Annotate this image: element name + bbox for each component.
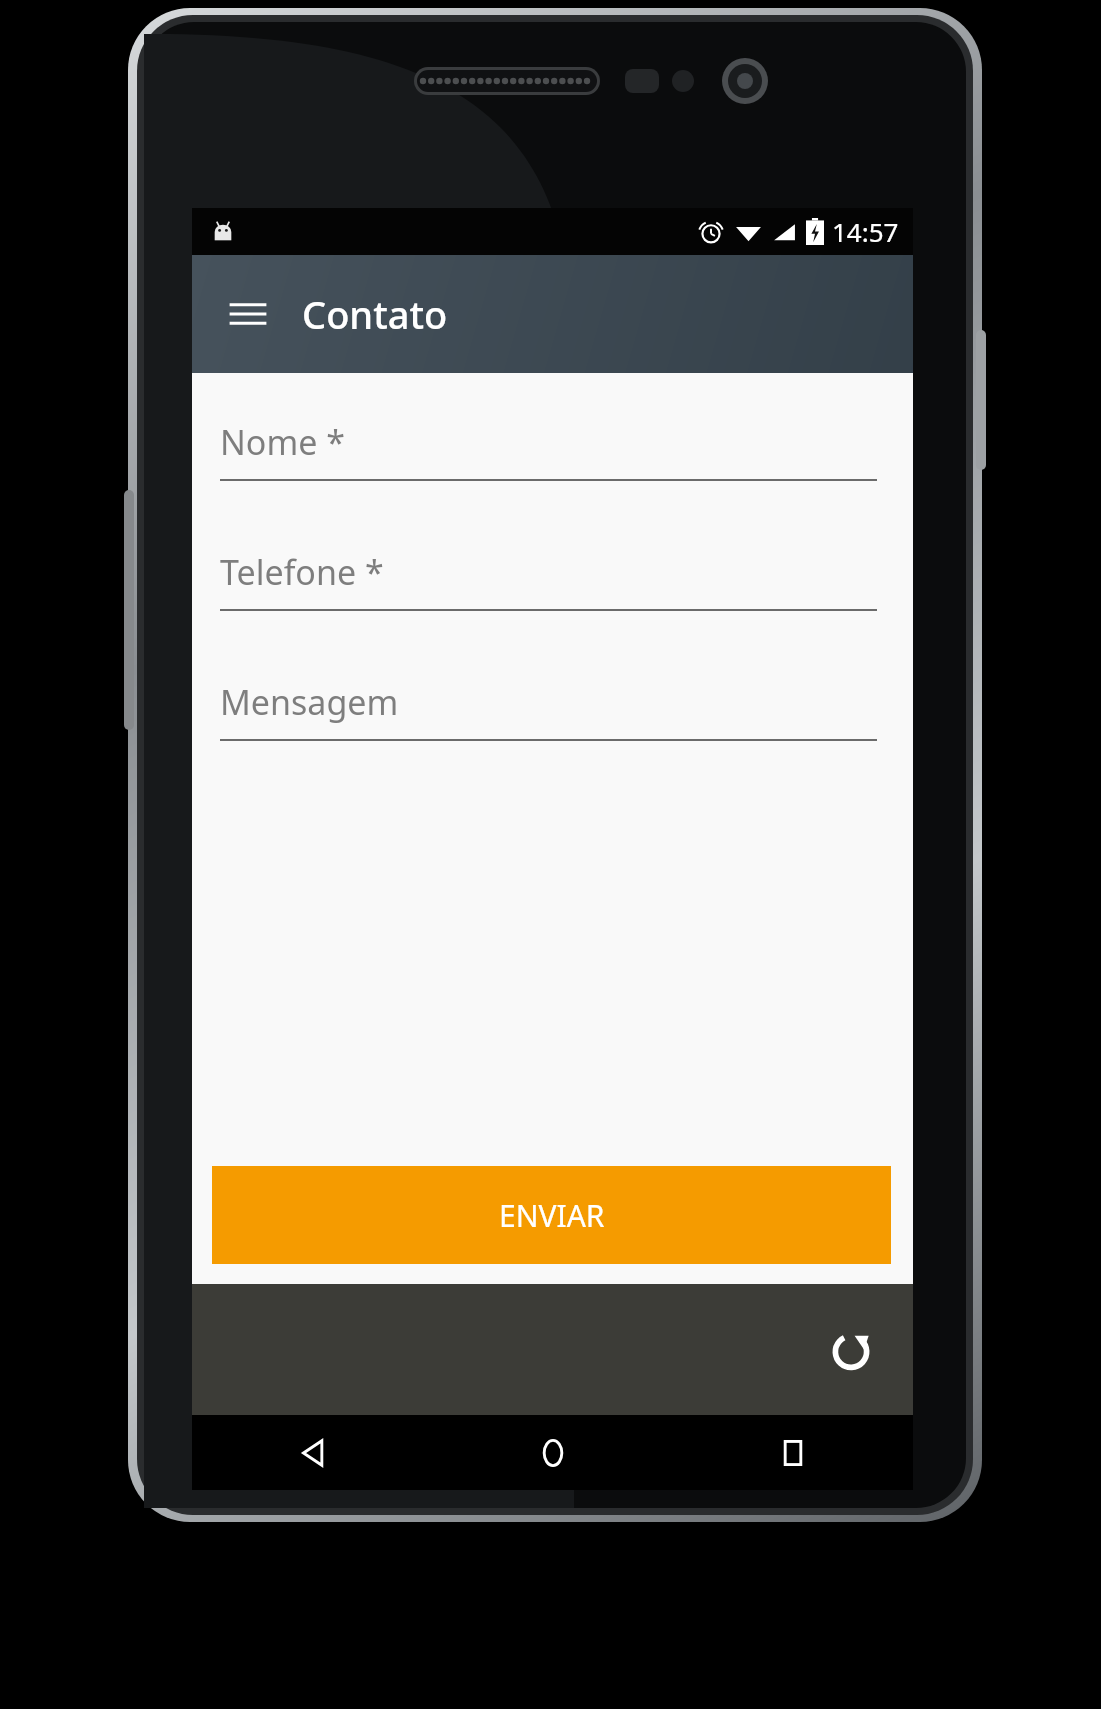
button[interactable]: Nome *: [220, 411, 877, 481]
staticText: Contato: [302, 288, 448, 340]
button[interactable]: Mensagem: [220, 671, 877, 741]
button[interactable]: Back: [192, 1415, 433, 1490]
staticText: ENVIAR: [499, 1195, 605, 1236]
staticText: 14:57: [832, 214, 899, 249]
button[interactable]: Recent apps: [673, 1415, 913, 1490]
staticText: Telefone *: [220, 549, 384, 595]
button[interactable]: Refresh: [815, 1314, 887, 1386]
button[interactable]: ENVIAR: [212, 1166, 891, 1264]
button[interactable]: Home: [433, 1415, 673, 1490]
button[interactable]: Telefone *: [220, 541, 877, 611]
staticText: Nome *: [220, 419, 345, 465]
button[interactable]: Open navigation drawer: [220, 286, 276, 342]
staticText: Mensagem: [220, 679, 399, 725]
